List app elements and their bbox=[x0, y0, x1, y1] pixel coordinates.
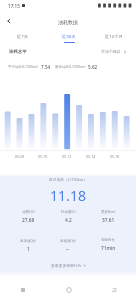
staticText: 05-10 bbox=[38, 154, 48, 159]
button[interactable]: Home bbox=[46, 280, 91, 300]
staticText: 05-16 bbox=[110, 154, 120, 159]
staticText: 查看更多驾驶行为 bbox=[51, 263, 82, 268]
button[interactable]: 近12个月 bbox=[91, 31, 136, 44]
staticText: 4.2 bbox=[65, 217, 72, 224]
staticText: 05-14 bbox=[86, 154, 96, 159]
button[interactable]: 近7天 bbox=[0, 31, 46, 44]
button[interactable]: 查看更多驾驶行为 bbox=[0, 261, 136, 269]
staticText: 油费(元) bbox=[22, 209, 35, 214]
staticText: 平均油耗(L/100km) bbox=[8, 64, 39, 69]
button[interactable]: 近30天 bbox=[46, 31, 91, 44]
staticText: 17:15 bbox=[8, 3, 20, 9]
button[interactable]: Back bbox=[91, 280, 136, 300]
staticText: 5.62 bbox=[88, 64, 98, 70]
staticText: 急加速(次) bbox=[20, 238, 37, 243]
staticText: 11.18 bbox=[0, 186, 136, 205]
staticText: 油耗数据 bbox=[0, 19, 136, 25]
staticText: 急减速(次) bbox=[60, 238, 77, 243]
button[interactable]: 节油小建议 bbox=[101, 48, 127, 55]
button[interactable]: Back bbox=[0, 12, 17, 29]
staticText: -- bbox=[66, 246, 70, 253]
button[interactable]: Recent apps bbox=[0, 280, 46, 300]
staticText: 近30天 bbox=[62, 33, 76, 39]
staticText: 单日油耗（L/100km） bbox=[0, 177, 136, 182]
staticText: 节油小建议 bbox=[101, 49, 121, 54]
staticText: 7.54 bbox=[41, 64, 51, 70]
staticText: 里程(km) bbox=[101, 209, 116, 214]
staticText: 近12个月 bbox=[105, 33, 123, 39]
staticText: 05-08 bbox=[15, 154, 25, 159]
staticText: 最优油耗(L/100km) bbox=[55, 64, 86, 69]
staticText: 37.61 bbox=[102, 217, 115, 224]
staticText: 05-12 bbox=[62, 154, 72, 159]
staticText: 近7天 bbox=[17, 33, 29, 39]
staticText: 驾驶时长 bbox=[101, 238, 115, 242]
staticText: 71min bbox=[101, 245, 116, 252]
staticText: 油耗水平 bbox=[9, 49, 27, 55]
staticText: 27.68 bbox=[22, 217, 35, 224]
staticText: 1 bbox=[27, 246, 30, 253]
staticText: 耗油量(L) bbox=[61, 209, 76, 214]
